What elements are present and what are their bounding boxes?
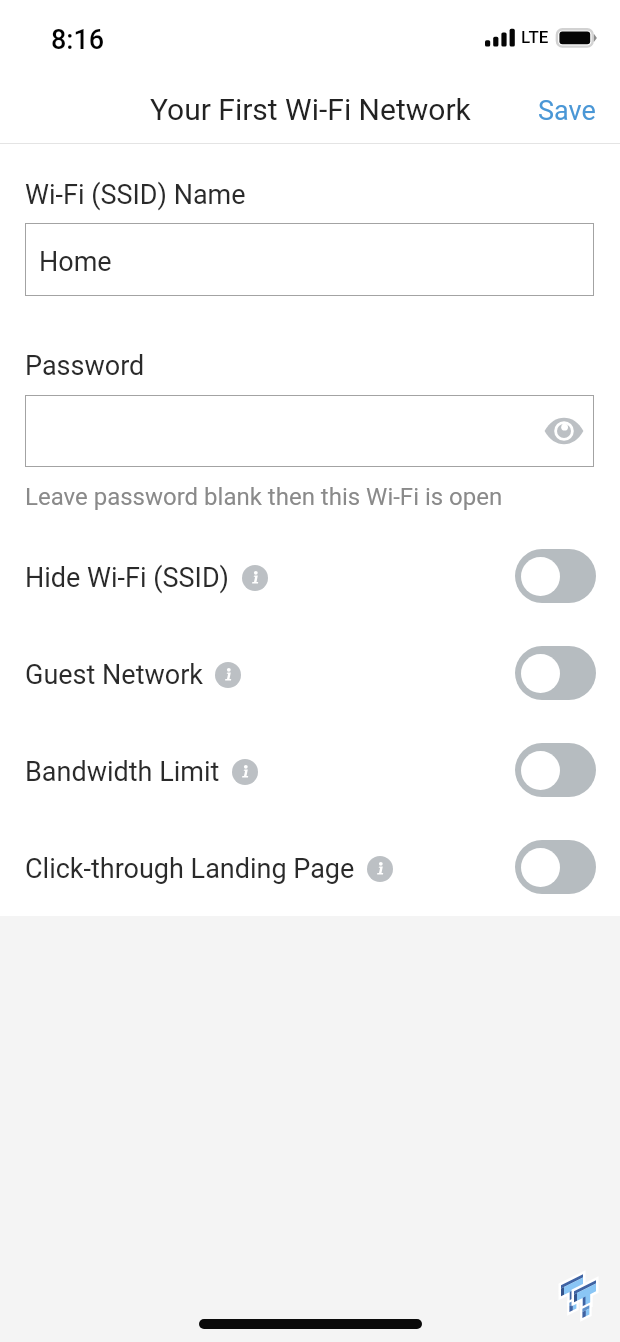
staticText: LTE bbox=[521, 27, 549, 47]
staticText: Wi-Fi (SSID) Name bbox=[25, 179, 246, 211]
staticText: Click-through Landing Page bbox=[25, 853, 355, 885]
button[interactable]: Save bbox=[512, 89, 620, 133]
button[interactable]: Show password bbox=[542, 409, 586, 453]
staticText: Your First Wi-Fi Network bbox=[150, 92, 471, 127]
button[interactable]: Click-through Landing Page bbox=[0, 820, 620, 917]
staticText: Bandwidth Limit bbox=[25, 756, 220, 788]
button[interactable]: More info about Bandwidth Limit bbox=[232, 759, 258, 785]
button[interactable]: More info about Click-through Landing Pa… bbox=[367, 856, 393, 882]
button[interactable]: Bandwidth Limit, off bbox=[515, 743, 596, 797]
staticText: Home bbox=[39, 246, 112, 278]
button[interactable]: Bandwidth Limit bbox=[0, 723, 620, 820]
button[interactable]: Home bbox=[25, 223, 594, 296]
staticText: 8:16 bbox=[51, 24, 105, 56]
staticText: Password bbox=[25, 350, 145, 382]
button[interactable]: Guest Network bbox=[0, 626, 620, 723]
staticText: Guest Network bbox=[25, 659, 203, 691]
button[interactable]: Guest Network, off bbox=[515, 646, 596, 700]
staticText: Leave password blank then this Wi-Fi is … bbox=[25, 483, 503, 511]
button[interactable]: Hide Wi-Fi (SSID) bbox=[0, 529, 620, 626]
staticText: Save bbox=[538, 95, 596, 127]
button[interactable]: More info about Guest Network bbox=[215, 662, 241, 688]
button[interactable]: More info about Hide Wi-Fi (SSID) bbox=[242, 565, 268, 591]
button[interactable]: Hide Wi-Fi (SSID), off bbox=[515, 549, 596, 603]
staticText: Hide Wi-Fi (SSID) bbox=[25, 562, 230, 594]
button[interactable]: Click-through Landing Page, off bbox=[515, 840, 596, 894]
button[interactable]: Show password bbox=[25, 395, 594, 467]
